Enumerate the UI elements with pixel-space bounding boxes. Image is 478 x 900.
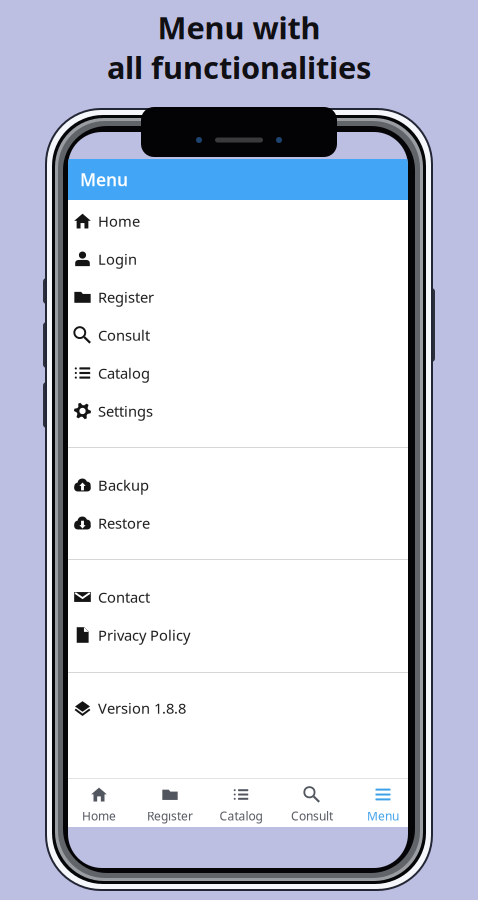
button[interactable]: Home <box>68 202 408 240</box>
staticText: Menu <box>367 808 399 824</box>
button[interactable]: Catalog <box>68 354 408 392</box>
staticText: Backup <box>98 475 149 495</box>
staticText: all functionalities <box>107 47 371 87</box>
button[interactable]: Restore <box>68 504 408 542</box>
staticText: Catalog <box>98 363 150 383</box>
staticText: Consult <box>291 808 333 824</box>
button[interactable]: Consult <box>276 779 347 827</box>
staticText: Home <box>82 808 116 824</box>
staticText: Contact <box>98 587 150 607</box>
staticText: Register <box>98 287 154 307</box>
button[interactable]: Consult <box>68 316 408 354</box>
button[interactable]: Menu <box>347 779 418 827</box>
staticText: Catalog <box>219 808 262 824</box>
button[interactable]: Backup <box>68 466 408 504</box>
button[interactable]: Version 1.8.8 <box>68 689 408 727</box>
button[interactable]: Home <box>63 779 134 827</box>
button[interactable]: Login <box>68 240 408 278</box>
staticText: Home <box>98 211 140 231</box>
button[interactable]: Contact <box>68 578 408 616</box>
staticText: Restore <box>98 513 150 533</box>
staticText: Register <box>147 808 193 824</box>
staticText: Settings <box>98 401 153 421</box>
staticText: Privacy Policy <box>98 625 190 645</box>
staticText: Login <box>98 249 137 269</box>
button[interactable]: Register <box>134 779 205 827</box>
button[interactable]: Settings <box>68 392 408 430</box>
button[interactable]: Privacy Policy <box>68 616 408 654</box>
button[interactable]: Catalog <box>205 779 276 827</box>
staticText: Menu <box>80 168 128 191</box>
staticText: Version 1.8.8 <box>98 698 186 718</box>
staticText: Menu with <box>157 7 320 48</box>
button[interactable]: Register <box>68 278 408 316</box>
staticText: Consult <box>98 325 150 345</box>
